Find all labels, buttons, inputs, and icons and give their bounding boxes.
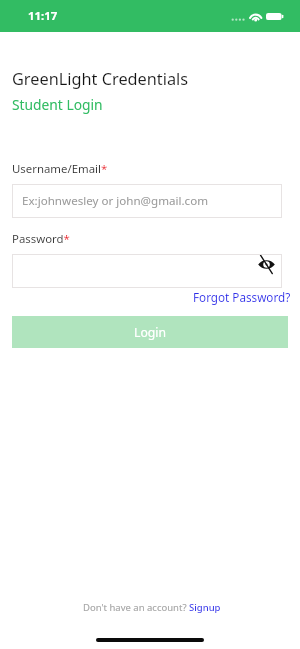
staticText: Username/Email* — [12, 161, 108, 177]
staticText: Password* — [12, 231, 70, 247]
button[interactable]: Toggle password visibility — [12, 254, 282, 288]
staticText: Login — [134, 324, 166, 341]
staticText: Signup — [189, 601, 221, 614]
staticText: 11:17 — [28, 8, 58, 24]
staticText: GreenLight Credentials — [12, 68, 189, 90]
button[interactable]: Login — [12, 316, 288, 348]
button[interactable]: Ex:johnwesley or john@gmail.com — [12, 184, 282, 218]
staticText: Ex:johnwesley or john@gmail.com — [22, 193, 209, 209]
staticText: Don't have an account? — [83, 601, 189, 614]
staticText: Student Login — [12, 95, 103, 114]
staticText: Forgot Password? — [193, 289, 291, 305]
button[interactable]: Signup — [189, 601, 221, 614]
button[interactable]: Forgot Password? — [193, 289, 291, 305]
button[interactable]: Toggle password visibility — [256, 254, 277, 275]
